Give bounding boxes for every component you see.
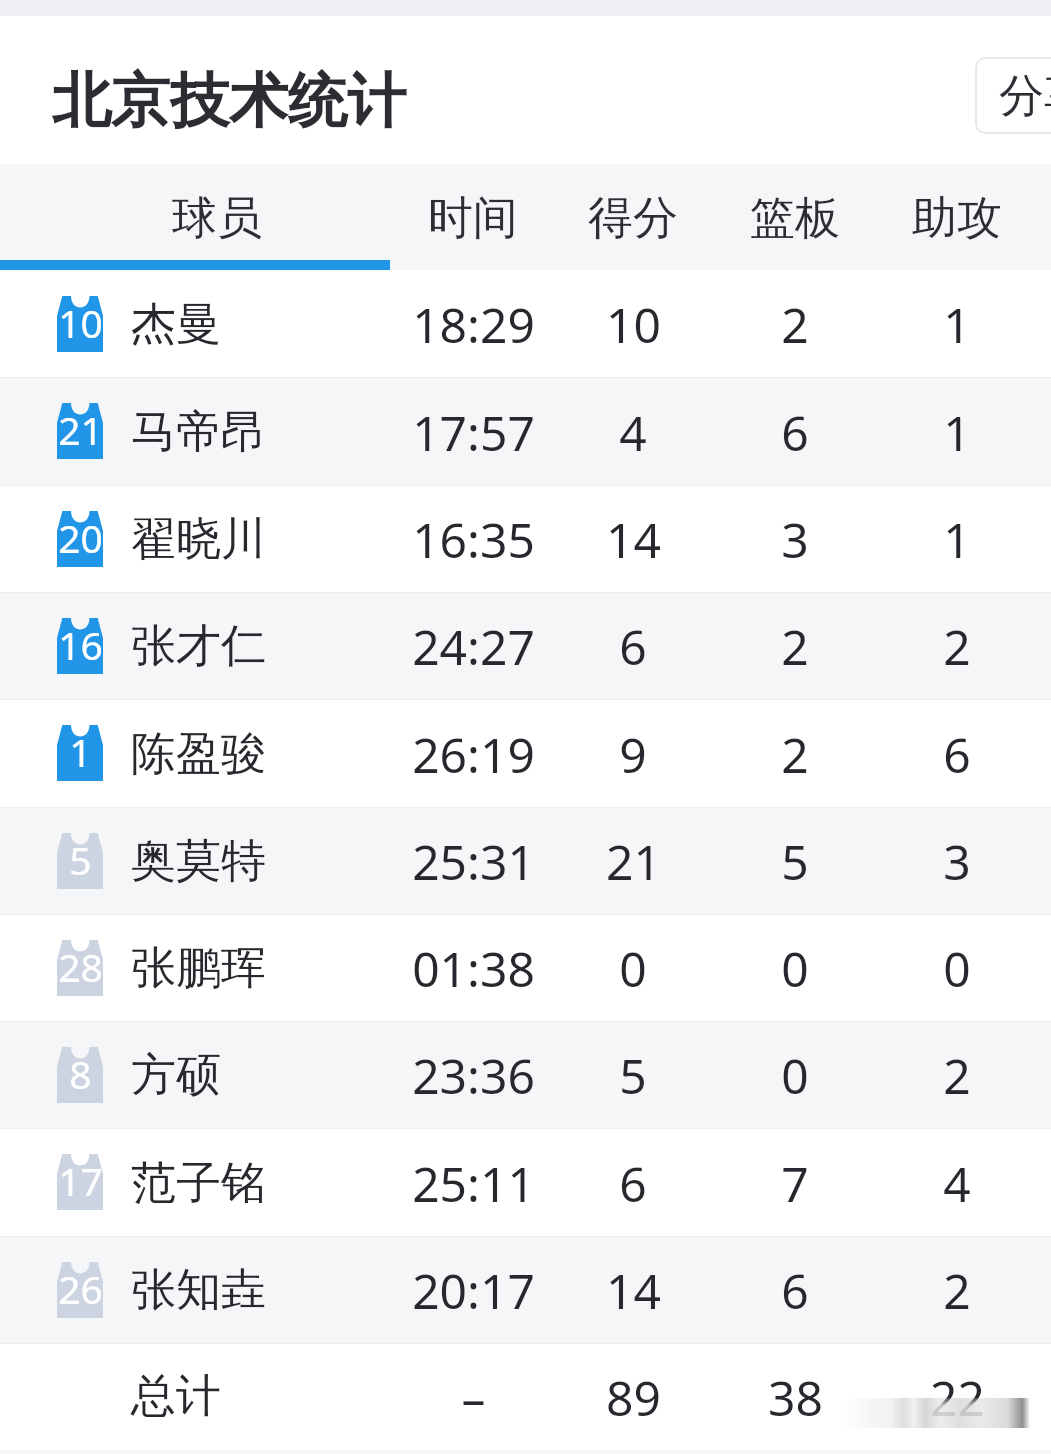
staticText: 89 (606, 1365, 661, 1430)
staticText: 10 (58, 296, 103, 349)
staticText: 26 (58, 1262, 103, 1315)
staticText: 0 (781, 936, 809, 1001)
staticText: 时间 (428, 190, 518, 247)
button[interactable]: 26 (0, 1236, 1051, 1343)
staticText: 18:29 (412, 292, 535, 357)
staticText: 0 (781, 1043, 809, 1108)
staticText: 助攻 (912, 190, 1002, 247)
staticText: 7 (781, 1151, 809, 1216)
staticText: 2 (781, 614, 809, 679)
staticText: 北京技术统计 (52, 64, 406, 138)
staticText: 0 (943, 936, 971, 1001)
staticText: 6 (619, 1151, 647, 1216)
staticText: 22 (930, 1365, 985, 1430)
staticText: 1 (943, 507, 971, 572)
staticText: 张鹏珲 (131, 940, 266, 997)
staticText: 38 (768, 1365, 823, 1430)
staticText: 2 (781, 722, 809, 787)
staticText: 范子铭 (131, 1155, 266, 1212)
staticText: 6 (619, 614, 647, 679)
staticText: 14 (606, 507, 661, 572)
staticText: 25:31 (412, 829, 535, 894)
staticText: 5 (619, 1043, 647, 1108)
staticText: 1 (943, 292, 971, 357)
staticText: 马帝昂 (131, 404, 266, 461)
staticText: 杰曼 (131, 296, 221, 353)
staticText: 6 (943, 722, 971, 787)
button[interactable]: 8 (0, 1021, 1051, 1128)
staticText: 17:57 (412, 400, 535, 465)
staticText: 1 (69, 725, 92, 778)
staticText: 分享 (999, 68, 1051, 125)
button[interactable]: 得分 (563, 164, 703, 270)
button[interactable]: 10 (0, 270, 1051, 377)
staticText: 5 (781, 829, 809, 894)
staticText: 17 (58, 1154, 103, 1207)
button[interactable]: 20 (0, 485, 1051, 592)
staticText: 20 (58, 511, 103, 564)
staticText: 张才仁 (131, 618, 266, 675)
staticText: 0 (619, 936, 647, 1001)
staticText: 01:38 (412, 936, 535, 1001)
staticText: 21 (58, 403, 103, 456)
button[interactable]: 17 (0, 1128, 1051, 1236)
staticText: 20:17 (412, 1258, 535, 1323)
staticText: 28 (58, 940, 103, 993)
staticText: 16:35 (412, 507, 535, 572)
staticText: 6 (781, 400, 809, 465)
staticText: 陈盈骏 (131, 726, 266, 783)
button[interactable]: 助攻 (887, 164, 1027, 270)
button[interactable]: 28 (0, 914, 1051, 1021)
button[interactable]: 篮板 (725, 164, 865, 270)
staticText: 14 (606, 1258, 661, 1323)
staticText: 24:27 (412, 614, 535, 679)
button[interactable]: 5 (0, 807, 1051, 914)
staticText: 4 (619, 400, 647, 465)
button[interactable]: 时间 (403, 164, 543, 270)
staticText: 23:36 (412, 1043, 535, 1108)
staticText: 10 (606, 292, 661, 357)
staticText: 5 (69, 833, 92, 886)
staticText: 9 (619, 722, 647, 787)
staticText: 26:19 (412, 722, 535, 787)
staticText: 3 (781, 507, 809, 572)
button[interactable]: 球员 (147, 164, 287, 270)
staticText: 2 (943, 1043, 971, 1108)
staticText: 方硕 (131, 1047, 221, 1104)
button[interactable]: 16 (0, 592, 1051, 699)
staticText: 16 (58, 618, 103, 671)
staticText: 总计 (131, 1368, 221, 1425)
staticText: 4 (943, 1151, 971, 1216)
staticText: 篮板 (750, 190, 840, 247)
button[interactable]: 1 (0, 699, 1051, 807)
staticText: 2 (943, 1258, 971, 1323)
button[interactable]: 总计 (0, 1343, 1051, 1450)
button[interactable]: 分享 Share (975, 57, 1051, 134)
staticText: 奥莫特 (131, 833, 266, 890)
staticText: 3 (943, 829, 971, 894)
button[interactable]: 21 (0, 377, 1051, 485)
staticText: 2 (781, 292, 809, 357)
staticText: 8 (69, 1047, 92, 1100)
staticText: – (461, 1365, 486, 1430)
staticText: 2 (943, 614, 971, 679)
staticText: 翟晓川 (131, 511, 266, 568)
staticText: 6 (781, 1258, 809, 1323)
staticText: 得分 (588, 190, 678, 247)
staticText: 25:11 (412, 1151, 535, 1216)
staticText: 张知垚 (131, 1262, 266, 1319)
staticText: 1 (943, 400, 971, 465)
staticText: 21 (606, 829, 661, 894)
staticText: 球员 (172, 190, 262, 247)
